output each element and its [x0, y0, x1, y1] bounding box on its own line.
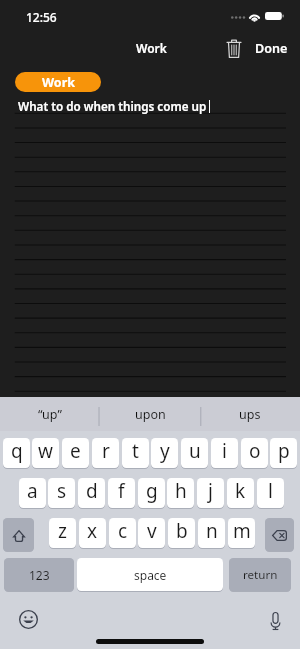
staticText: c	[118, 518, 128, 544]
button[interactable]: upon	[100, 397, 200, 431]
staticText: v	[147, 518, 157, 544]
button[interactable]: Done	[251, 37, 292, 60]
button[interactable]: Work	[15, 72, 101, 92]
staticText: z	[58, 518, 67, 544]
button[interactable]: Shift	[3, 518, 34, 551]
button[interactable]: d	[78, 478, 105, 508]
staticText: l	[268, 478, 273, 504]
staticText: s	[57, 478, 67, 504]
staticText: j	[208, 478, 213, 504]
staticText: What to do when things come up	[18, 98, 207, 114]
button[interactable]: m	[228, 518, 255, 548]
staticText: m	[233, 518, 251, 544]
button[interactable]: l	[257, 478, 284, 508]
button[interactable]: o	[241, 438, 268, 468]
button[interactable]: q	[3, 438, 30, 468]
staticText: ups	[239, 406, 261, 423]
staticText: w	[38, 438, 53, 464]
button[interactable]: z	[49, 518, 76, 548]
staticText: space	[134, 567, 167, 583]
staticText: 12:56	[26, 9, 57, 25]
button[interactable]: k	[227, 478, 254, 508]
button[interactable]: ups	[200, 397, 300, 431]
button[interactable]: p	[270, 438, 297, 468]
button[interactable]: h	[167, 478, 194, 508]
button[interactable]: j	[197, 478, 224, 508]
button[interactable]: Delete note	[221, 35, 247, 61]
staticText: d	[86, 478, 98, 504]
staticText: q	[11, 438, 23, 464]
staticText: b	[176, 518, 188, 544]
button[interactable]: a	[19, 478, 46, 508]
staticText: h	[175, 478, 187, 504]
staticText: a	[27, 478, 38, 504]
button[interactable]: r	[92, 438, 119, 468]
staticText: t	[132, 438, 139, 464]
button[interactable]: “up”	[0, 397, 100, 431]
staticText: Work	[136, 40, 167, 56]
staticText: r	[102, 438, 110, 464]
staticText: 123	[29, 567, 50, 583]
staticText: upon	[135, 406, 166, 423]
staticText: x	[87, 518, 98, 544]
button[interactable]: u	[181, 438, 208, 468]
staticText: n	[206, 518, 218, 544]
button[interactable]: n	[198, 518, 225, 548]
button[interactable]: f	[108, 478, 135, 508]
button[interactable]: c	[109, 518, 136, 548]
staticText: e	[70, 438, 81, 464]
staticText: i	[222, 438, 227, 464]
staticText: return	[243, 567, 278, 583]
button[interactable]: return	[229, 558, 291, 591]
button[interactable]: space	[77, 558, 223, 591]
button[interactable]: s	[48, 478, 75, 508]
button[interactable]: g	[138, 478, 165, 508]
staticText: o	[249, 438, 261, 464]
button[interactable]: i	[211, 438, 238, 468]
staticText: k	[235, 478, 246, 504]
button[interactable]: w	[32, 438, 59, 468]
staticText: “up”	[38, 406, 62, 423]
staticText: f	[118, 478, 125, 504]
button[interactable]: y	[151, 438, 178, 468]
staticText: u	[189, 438, 201, 464]
staticText: Done	[255, 40, 288, 57]
button[interactable]: Dictation	[262, 607, 289, 634]
button[interactable]: Backspace	[265, 518, 294, 551]
button[interactable]: x	[79, 518, 106, 548]
staticText: Work	[42, 74, 75, 91]
button[interactable]: e	[62, 438, 89, 468]
button[interactable]: v	[138, 518, 165, 548]
staticText: y	[160, 438, 170, 464]
button[interactable]: Emoji keyboard	[14, 605, 42, 633]
button[interactable]: b	[168, 518, 195, 548]
button[interactable]: 123	[4, 558, 74, 591]
staticText: g	[146, 478, 158, 504]
button[interactable]: t	[122, 438, 149, 468]
staticText: p	[278, 438, 290, 464]
